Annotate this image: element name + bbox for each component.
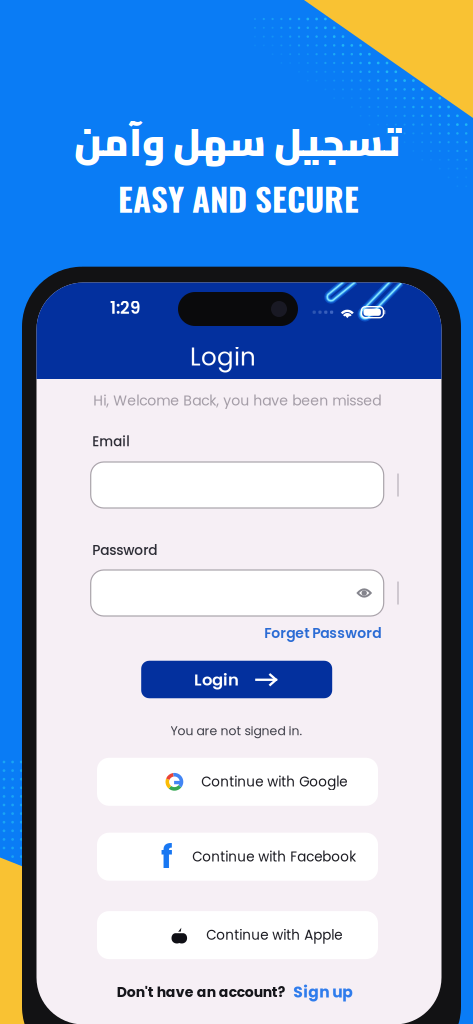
staticText: Forget Password [264,623,381,643]
staticText: Sign up [293,981,353,1003]
button[interactable]: Login [141,661,332,698]
staticText: تسجيل سهل وآمن [73,106,400,178]
staticText: Email [92,432,130,451]
button[interactable]: Continue with Facebook [97,833,378,881]
staticText: Password [92,541,157,560]
staticText: Continue with Apple [206,926,342,944]
staticText: Login [194,668,239,691]
staticText: Hi, Welcome Back, you have been missed [93,391,381,410]
staticText: You are not signed in. [170,722,302,740]
button[interactable]: Forget Password [258,618,387,648]
staticText: Login [190,340,256,374]
button[interactable]: Continue with Apple [97,911,378,959]
button[interactable]: Sign up [293,981,353,1003]
staticText: EASY AND SECURE [118,174,359,222]
staticText: Don't have an account? [117,982,286,1002]
button[interactable]: Continue with Google [97,758,378,806]
staticText: 1:29 [110,296,140,320]
staticText: f [161,834,173,879]
staticText: Continue with Facebook [192,847,356,866]
staticText: Continue with Google [201,772,347,791]
